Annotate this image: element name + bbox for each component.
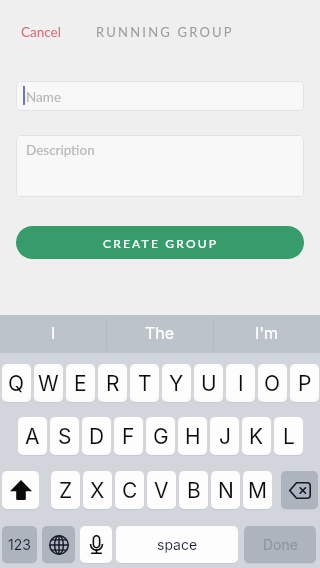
button[interactable]: Q: [2, 364, 31, 402]
staticText: V: [154, 478, 169, 503]
staticText: Description: [26, 142, 95, 158]
staticText: G: [153, 424, 169, 449]
staticText: Y: [169, 371, 184, 396]
button[interactable]: V: [147, 471, 176, 509]
staticText: D: [89, 424, 105, 449]
button[interactable]: Description: [16, 135, 304, 197]
button[interactable]: Name: [16, 81, 304, 111]
button[interactable]: R: [98, 364, 127, 402]
staticText: W: [38, 371, 59, 396]
staticText: Done: [263, 536, 298, 553]
staticText: N: [218, 478, 234, 503]
staticText: E: [74, 371, 87, 396]
button[interactable]: F: [114, 417, 143, 455]
staticText: C: [122, 478, 138, 503]
button[interactable]: W: [34, 364, 63, 402]
button[interactable]: H: [178, 417, 207, 455]
button[interactable]: The: [107, 315, 213, 353]
staticText: J: [219, 424, 231, 449]
staticText: R: [106, 371, 120, 396]
staticText: T: [138, 371, 152, 396]
button[interactable]: N: [211, 471, 240, 509]
button[interactable]: Y: [162, 364, 191, 402]
staticText: space: [157, 536, 198, 553]
staticText: 123: [8, 536, 31, 553]
staticText: F: [122, 424, 135, 449]
button[interactable]: CREATE GROUP: [16, 226, 304, 259]
button[interactable]: A: [18, 417, 47, 455]
button[interactable]: D: [82, 417, 111, 455]
staticText: K: [249, 424, 264, 449]
button[interactable]: Switch keyboard: [42, 526, 75, 563]
button[interactable]: Shift: [2, 471, 39, 509]
button[interactable]: Backspace: [281, 471, 318, 509]
staticText: I: [51, 323, 56, 342]
button[interactable]: S: [50, 417, 79, 455]
button[interactable]: B: [179, 471, 208, 509]
staticText: RUNNING GROUP: [96, 24, 234, 40]
staticText: Name: [26, 89, 62, 105]
button[interactable]: C: [115, 471, 144, 509]
staticText: B: [187, 478, 201, 503]
staticText: Cancel: [21, 24, 61, 40]
button[interactable]: L: [274, 417, 303, 455]
staticText: Z: [59, 478, 73, 503]
staticText: L: [283, 424, 295, 449]
button[interactable]: P: [290, 364, 319, 402]
staticText: P: [298, 371, 312, 396]
button[interactable]: K: [242, 417, 271, 455]
button[interactable]: space: [116, 526, 238, 563]
button[interactable]: G: [146, 417, 175, 455]
staticText: Q: [8, 371, 25, 396]
staticText: S: [58, 424, 72, 449]
button[interactable]: I'm: [214, 315, 320, 353]
staticText: X: [90, 478, 105, 503]
button[interactable]: T: [130, 364, 159, 402]
staticText: O: [264, 371, 281, 396]
button[interactable]: J: [210, 417, 239, 455]
button[interactable]: Cancel: [14, 19, 68, 45]
staticText: M: [248, 478, 267, 503]
staticText: I: [238, 371, 244, 396]
staticText: I'm: [255, 323, 279, 342]
button[interactable]: O: [258, 364, 287, 402]
button[interactable]: Z: [51, 471, 80, 509]
staticText: A: [25, 424, 40, 449]
button[interactable]: Dictate: [80, 526, 112, 563]
button[interactable]: I: [226, 364, 255, 402]
button[interactable]: Done: [244, 526, 316, 563]
button[interactable]: M: [243, 471, 272, 509]
button[interactable]: 123: [2, 526, 37, 563]
staticText: The: [145, 323, 175, 342]
button[interactable]: I: [0, 315, 106, 353]
button[interactable]: X: [83, 471, 112, 509]
button[interactable]: U: [194, 364, 223, 402]
button[interactable]: E: [66, 364, 95, 402]
staticText: CREATE GROUP: [103, 236, 219, 250]
staticText: H: [185, 424, 201, 449]
staticText: U: [201, 371, 217, 396]
